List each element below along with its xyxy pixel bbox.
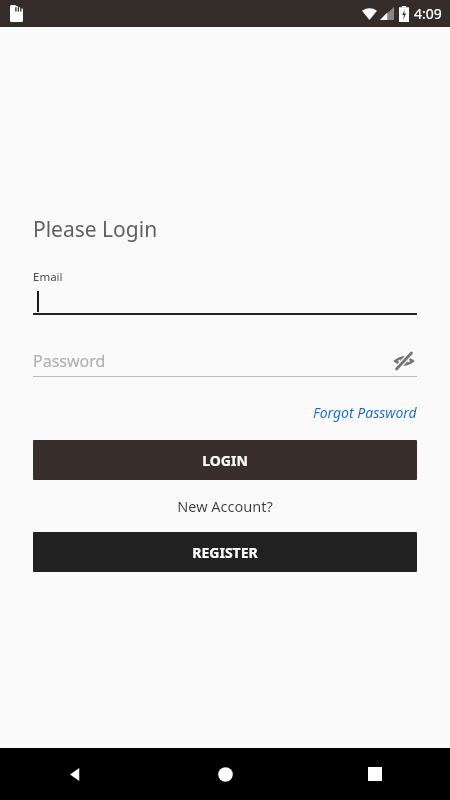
button[interactable]: Password (33, 348, 417, 374)
staticText: REGISTER (192, 543, 258, 562)
staticText: 4:09 (414, 4, 442, 23)
button[interactable]: LOGIN (33, 440, 417, 480)
button[interactable]: Forgot Password (313, 403, 417, 422)
button[interactable]: REGISTER (33, 532, 417, 572)
button[interactable]: Show password (391, 348, 417, 374)
button[interactable] (33, 290, 417, 313)
button[interactable]: Recent apps (300, 748, 450, 800)
staticText: LOGIN (202, 451, 248, 470)
button[interactable]: Back (0, 748, 150, 800)
staticText: Password (33, 350, 106, 372)
staticText: Email (33, 269, 63, 285)
staticText: New Account? (177, 496, 273, 516)
button[interactable]: Home (150, 748, 300, 800)
staticText: Forgot Password (313, 403, 417, 422)
staticText: Please Login (33, 215, 158, 244)
